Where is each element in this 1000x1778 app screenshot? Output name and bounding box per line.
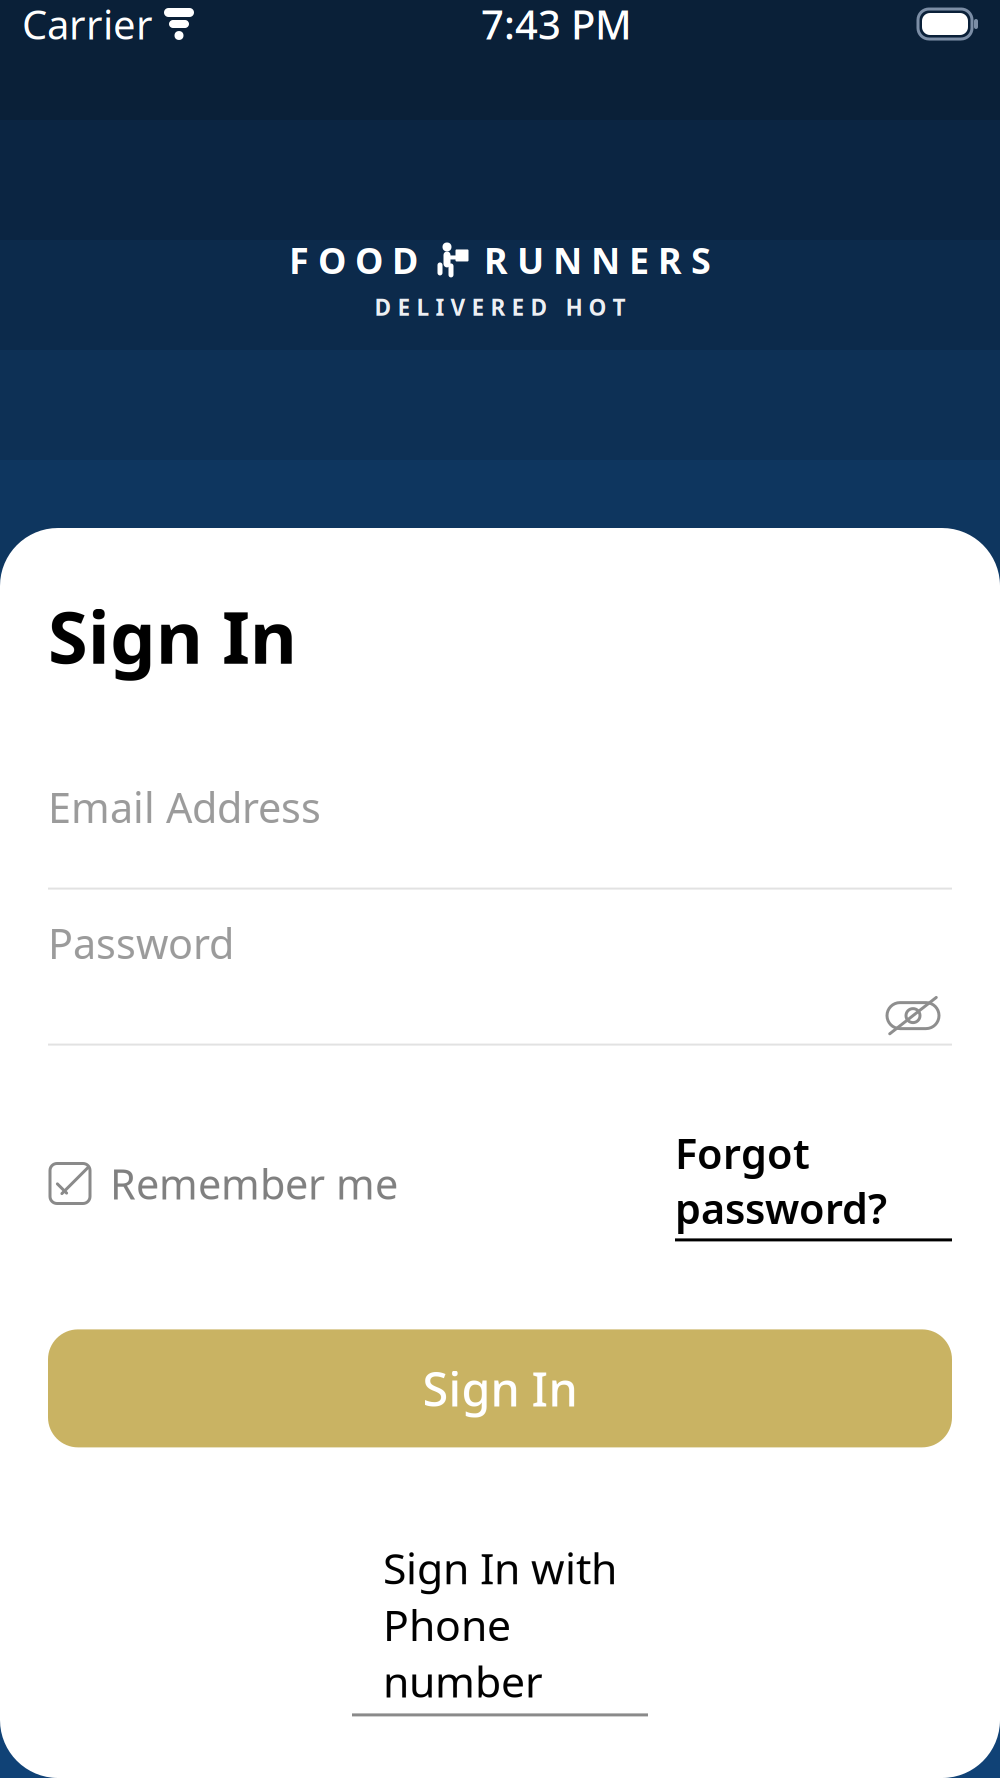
staticText: 7:43 PM — [481, 0, 632, 50]
staticText: Remember me — [110, 1156, 398, 1211]
button[interactable]: Sign In — [48, 1329, 952, 1447]
staticText: Sign In — [48, 588, 297, 684]
button[interactable]: Sign In with Phone number — [352, 1539, 648, 1716]
button[interactable]: Show password — [874, 988, 952, 1044]
staticText: Carrier — [22, 0, 153, 50]
button[interactable]: Remember me — [48, 1156, 398, 1211]
staticText: Password — [48, 916, 234, 970]
staticText: D E L I V E R E D H O T — [374, 292, 625, 322]
staticText: Sign In with Phone number — [383, 1539, 617, 1709]
staticText: Email Address — [48, 780, 321, 834]
staticText: R U N N E R S — [484, 236, 711, 284]
button[interactable]: Forgot password? — [675, 1126, 952, 1241]
staticText: Sign In — [422, 1357, 577, 1419]
staticText: Forgot password? — [675, 1126, 887, 1235]
staticText: F O O D — [289, 236, 418, 284]
